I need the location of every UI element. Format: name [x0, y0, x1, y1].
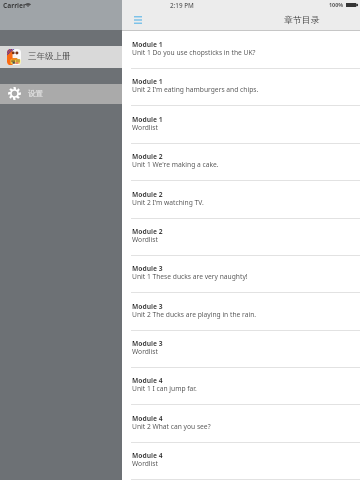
- staticText: Module 2: [132, 227, 163, 236]
- staticText: Wordlist: [132, 235, 158, 244]
- staticText: Unit 2 I'm eating hamburgers and chips.: [132, 85, 259, 94]
- staticText: Module 1: [132, 115, 163, 124]
- button[interactable]: Open navigation menu: [129, 13, 146, 27]
- staticText: Module 3: [132, 339, 163, 348]
- staticText: 三年级上册: [28, 51, 71, 62]
- button[interactable]: 设置: [0, 84, 122, 104]
- staticText: 章节目录: [284, 14, 320, 25]
- staticText: Carrier: [3, 1, 26, 10]
- button[interactable]: Module 4: [122, 443, 360, 480]
- staticText: Unit 2 The ducks are playing in the rain…: [132, 310, 257, 319]
- staticText: 100%: [329, 1, 344, 8]
- staticText: Module 3: [132, 264, 163, 273]
- staticText: Wordlist: [132, 123, 158, 132]
- staticText: Unit 1 We're making a cake.: [132, 160, 219, 169]
- staticText: Module 4: [132, 414, 163, 423]
- button[interactable]: Module 1: [122, 107, 360, 144]
- button[interactable]: Module 3: [122, 331, 360, 368]
- staticText: 2:19 PM: [170, 1, 194, 10]
- staticText: Unit 2 I'm watching TV.: [132, 198, 204, 207]
- staticText: Module 4: [132, 376, 163, 385]
- button[interactable]: Module 2: [122, 182, 360, 219]
- staticText: Wordlist: [132, 347, 158, 356]
- staticText: Module 3: [132, 302, 163, 311]
- staticText: 设置: [28, 89, 44, 99]
- staticText: Unit 2 What can you see?: [132, 422, 211, 431]
- button[interactable]: Module 1: [122, 69, 360, 106]
- staticText: Module 1: [132, 77, 163, 86]
- button[interactable]: Module 2: [122, 144, 360, 181]
- staticText: Unit 1 I can jump far.: [132, 384, 197, 393]
- staticText: Module 4: [132, 451, 163, 460]
- button[interactable]: Module 4: [122, 368, 360, 405]
- staticText: Module 2: [132, 152, 163, 161]
- button[interactable]: Module 3: [122, 294, 360, 331]
- button[interactable]: Module 1: [122, 32, 360, 69]
- staticText: Module 2: [132, 190, 163, 199]
- staticText: Wordlist: [132, 459, 158, 468]
- button[interactable]: Module 3: [122, 256, 360, 293]
- staticText: Unit 1 Do you use chopsticks in the UK?: [132, 48, 256, 57]
- button[interactable]: Module 2: [122, 219, 360, 256]
- staticText: Module 1: [132, 40, 163, 49]
- staticText: Unit 1 These ducks are very naughty!: [132, 272, 248, 281]
- button[interactable]: 三年级上册: [0, 46, 122, 68]
- button[interactable]: Module 4: [122, 406, 360, 443]
